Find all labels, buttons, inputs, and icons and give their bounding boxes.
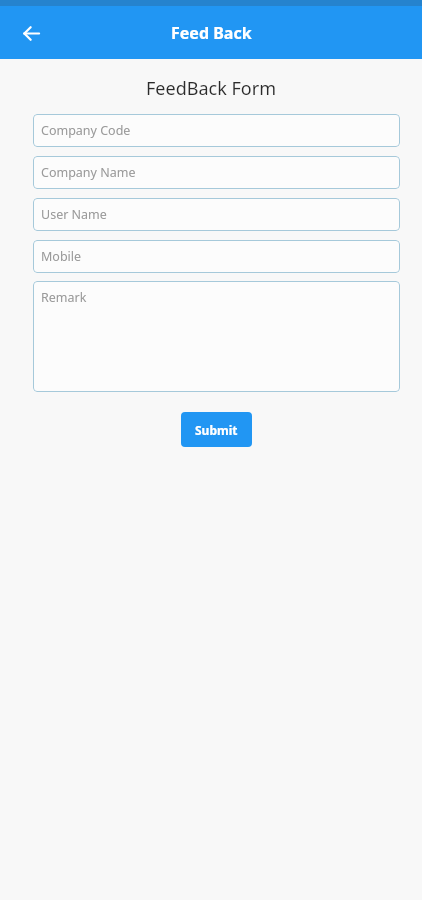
button[interactable]: User Name (33, 198, 400, 231)
button[interactable]: Company Name (33, 156, 400, 189)
button[interactable]: Mobile (33, 240, 400, 273)
staticText: Submit (195, 422, 238, 438)
staticText: Feed Back (171, 22, 252, 44)
staticText: Company Name (41, 164, 136, 181)
button[interactable]: Remark (33, 281, 400, 392)
staticText: Remark (41, 289, 87, 306)
staticText: User Name (41, 206, 107, 223)
button[interactable]: Submit (181, 412, 252, 447)
staticText: Mobile (41, 248, 82, 265)
staticText: Company Code (41, 122, 131, 139)
button[interactable]: Company Code (33, 114, 400, 147)
button[interactable]: Back (13, 15, 49, 51)
staticText: FeedBack Form (0, 76, 422, 101)
